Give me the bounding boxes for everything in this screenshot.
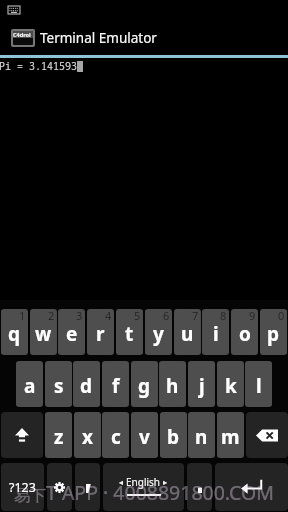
staticText: u (181, 321, 194, 347)
staticText: h (166, 373, 179, 399)
staticText: 4 (105, 309, 112, 323)
staticText: 9 (249, 309, 256, 323)
button[interactable]: j (188, 361, 215, 407)
staticText: 0 (278, 309, 285, 323)
staticText: 8 (220, 309, 227, 323)
button[interactable]: a (16, 361, 43, 407)
staticText: T APP · 4008891800.COM (46, 479, 274, 506)
staticText: d (80, 373, 93, 399)
staticText: f (112, 373, 120, 399)
button[interactable]: n (188, 412, 215, 458)
staticText: c (111, 424, 121, 450)
button[interactable]: b (160, 412, 187, 458)
staticText: 6 (163, 309, 170, 323)
staticText: 3 (76, 309, 83, 323)
button[interactable]: h (159, 361, 186, 407)
staticText: z (54, 424, 64, 450)
staticText: 5 (134, 309, 141, 323)
staticText: w (35, 321, 52, 347)
button[interactable]: w (30, 309, 57, 355)
button[interactable]: i (202, 309, 229, 355)
button[interactable]: Comma (75, 463, 100, 511)
staticText: s (54, 373, 64, 399)
button[interactable]: c (102, 412, 129, 458)
staticText: ?123 (9, 479, 36, 496)
staticText: o (239, 321, 251, 347)
button[interactable]: Enter (215, 463, 288, 511)
staticText: Pi = 3.141593 (0, 59, 77, 73)
staticText: i (213, 321, 219, 347)
staticText: v (139, 424, 150, 450)
button[interactable]: x (74, 412, 101, 458)
button[interactable]: y (145, 309, 172, 355)
button[interactable]: Shift (1, 412, 43, 458)
staticText: k (225, 373, 237, 399)
staticText: 易下 (14, 486, 46, 506)
staticText: p (267, 321, 280, 347)
staticText: 7 (192, 309, 199, 323)
button[interactable]: u (174, 309, 201, 355)
staticText: t (125, 321, 134, 347)
staticText: y (153, 321, 164, 347)
button[interactable]: Period (187, 463, 212, 511)
button[interactable]: e (58, 309, 85, 355)
staticText: j (199, 373, 205, 399)
button[interactable]: o (231, 309, 258, 355)
staticText: e (66, 321, 78, 347)
staticText: b (167, 424, 180, 450)
button[interactable]: k (217, 361, 244, 407)
staticText: Terminal Emulator (40, 29, 157, 47)
staticText: C4droid (13, 31, 33, 38)
button[interactable]: r (87, 309, 114, 355)
button[interactable]: v (131, 412, 158, 458)
button[interactable]: Settings (47, 463, 72, 511)
staticText: ▸ (163, 478, 168, 487)
staticText: n (195, 424, 208, 450)
staticText: m (221, 424, 240, 450)
button[interactable]: z (45, 412, 72, 458)
staticText: g (138, 373, 151, 399)
staticText: 2 (48, 309, 55, 323)
button[interactable]: g (131, 361, 158, 407)
button[interactable]: ◂ (103, 463, 184, 511)
button[interactable]: d (73, 361, 100, 407)
staticText: q (8, 321, 21, 347)
button[interactable]: l (245, 361, 272, 407)
staticText: English (126, 475, 161, 489)
button[interactable]: m (217, 412, 244, 458)
staticText: ◂ (119, 478, 124, 487)
button[interactable]: t (116, 309, 143, 355)
staticText: r (96, 321, 105, 347)
button[interactable]: p (260, 309, 287, 355)
staticText: a (24, 373, 36, 399)
staticText: l (256, 373, 262, 399)
button[interactable]: s (45, 361, 72, 407)
staticText: x (82, 424, 93, 450)
button[interactable]: ?123 (1, 463, 44, 511)
button[interactable]: Backspace (246, 412, 288, 458)
button[interactable]: f (102, 361, 129, 407)
button[interactable]: q (1, 309, 28, 355)
staticText: 1 (19, 309, 26, 323)
